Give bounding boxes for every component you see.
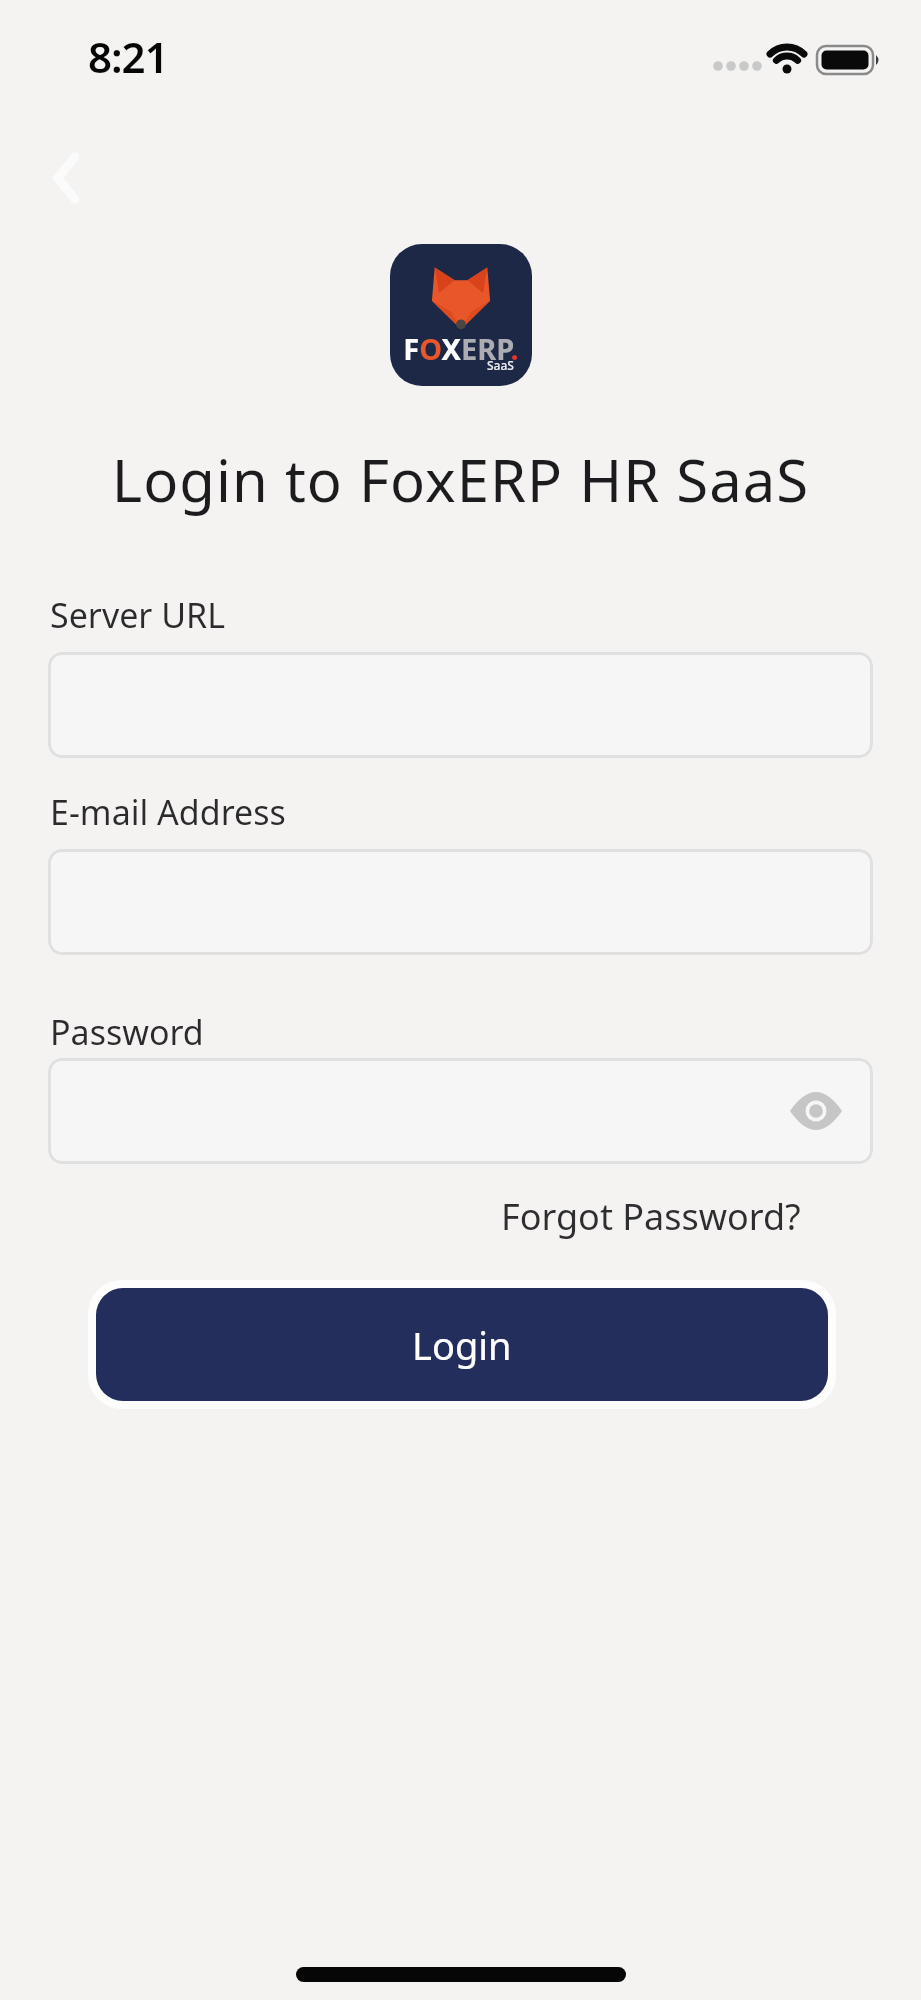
- staticText: SaaS: [487, 357, 514, 373]
- staticText: Server URL: [50, 592, 226, 638]
- staticText: Login to FoxERP HR SaaS: [0, 440, 921, 519]
- staticText: Password: [50, 1009, 204, 1055]
- button[interactable]: [48, 1058, 873, 1164]
- staticText: 8:21: [88, 28, 168, 85]
- staticText: Login: [412, 1319, 512, 1371]
- button[interactable]: [48, 849, 873, 955]
- button[interactable]: [48, 652, 873, 758]
- button[interactable]: [44, 150, 94, 206]
- button[interactable]: Login: [96, 1288, 828, 1401]
- button[interactable]: Forgot Password?: [501, 1192, 801, 1241]
- staticText: FOXERP.: [390, 329, 532, 368]
- staticText: E-mail Address: [50, 789, 286, 835]
